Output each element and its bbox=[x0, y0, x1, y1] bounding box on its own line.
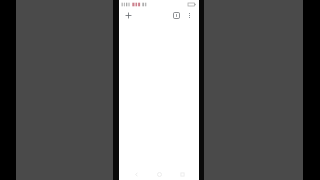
button[interactable]: Recent apps bbox=[176, 169, 188, 180]
button[interactable]: Home bbox=[153, 169, 165, 180]
button[interactable]: More options bbox=[184, 10, 195, 21]
button[interactable]: Switch tabs bbox=[171, 10, 182, 21]
button[interactable]: New tab bbox=[123, 10, 134, 21]
